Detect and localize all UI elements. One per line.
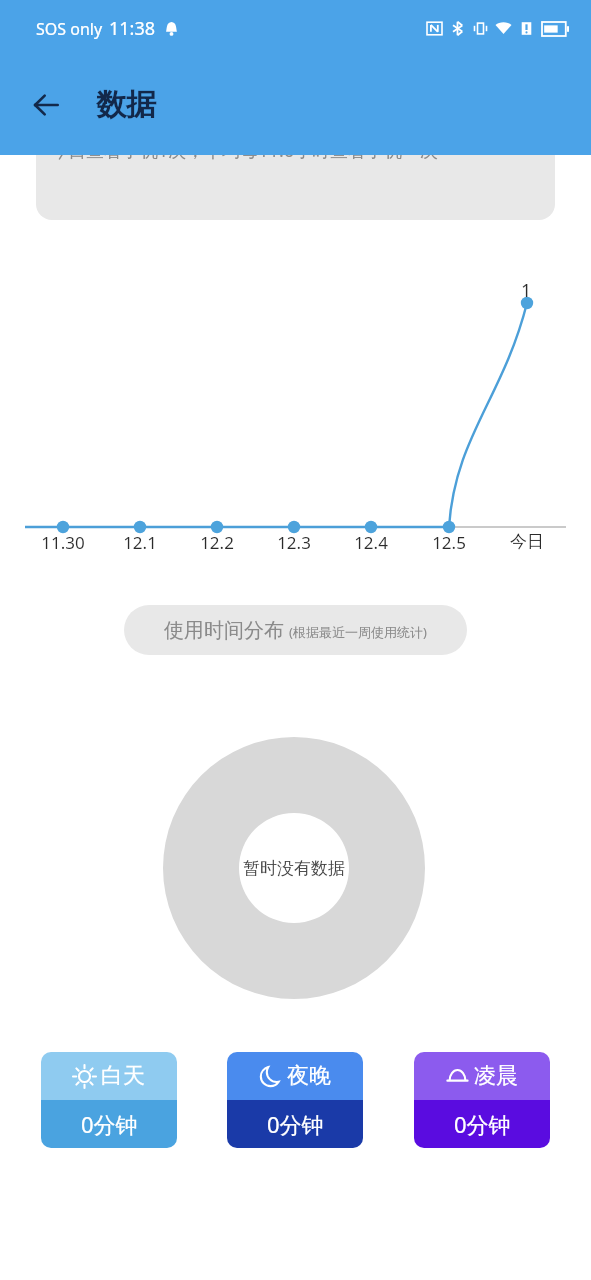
- staticText: 12.2: [187, 531, 247, 554]
- staticText: 11.30: [33, 531, 93, 554]
- staticText: 11:38: [109, 16, 156, 41]
- staticText: 暂时没有数据: [243, 858, 345, 879]
- staticText: 凌晨: [474, 1062, 518, 1090]
- button[interactable]: 白天: [41, 1052, 177, 1148]
- staticText: 白天: [101, 1062, 145, 1090]
- staticText: 12.3: [264, 531, 324, 554]
- staticText: 使用时间分布: [164, 618, 284, 643]
- button[interactable]: 凌晨: [414, 1052, 550, 1148]
- staticText: SOS only: [36, 18, 103, 40]
- staticText: 夜晚: [287, 1062, 331, 1090]
- staticText: 0分钟: [454, 1109, 511, 1139]
- staticText: 12.4: [341, 531, 401, 554]
- button[interactable]: Back: [22, 81, 70, 129]
- staticText: 今日: [501, 531, 553, 552]
- staticText: 今日查看手机1次，平均每11.6小时查看手机一次: [50, 138, 439, 163]
- staticText: (根据最近一周使用统计): [289, 623, 427, 641]
- staticText: 12.5: [419, 531, 479, 554]
- staticText: 1: [521, 278, 532, 303]
- staticText: 数据: [96, 86, 156, 124]
- button[interactable]: 夜晚: [227, 1052, 363, 1148]
- button[interactable]: 使用时间分布: [124, 605, 467, 655]
- staticText: 12.1: [110, 531, 170, 554]
- staticText: 0分钟: [267, 1109, 324, 1139]
- button[interactable]: 今日查看手机1次，平均每11.6小时查看手机一次: [36, 120, 555, 220]
- staticText: 0分钟: [81, 1109, 138, 1139]
